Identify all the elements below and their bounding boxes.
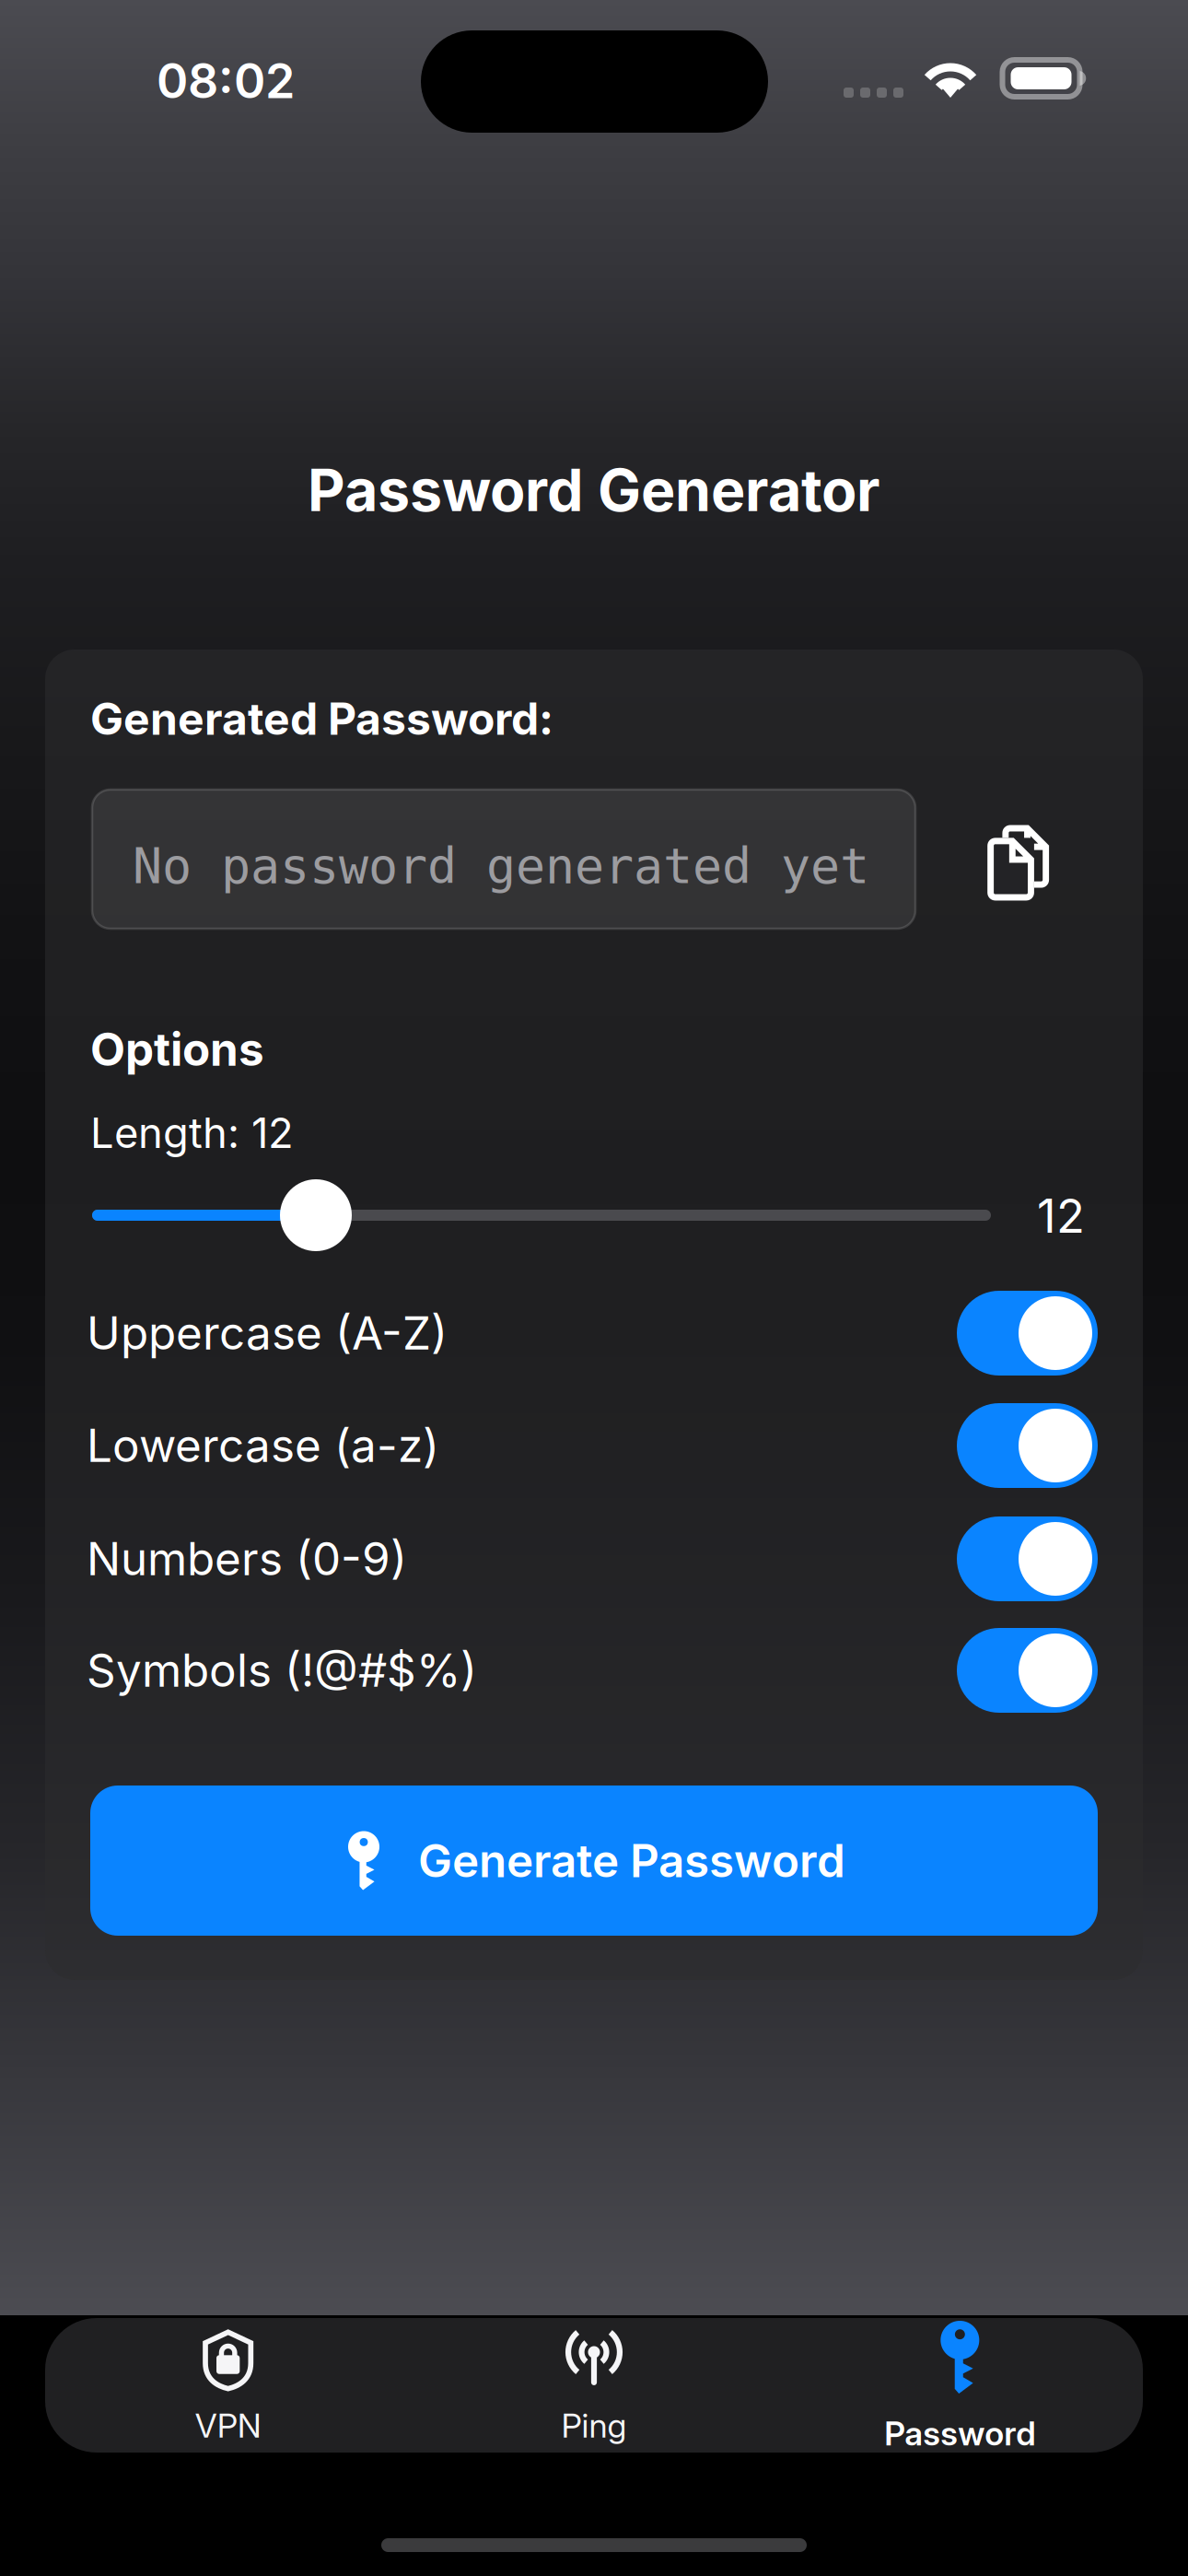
staticText: VPN (195, 2405, 261, 2446)
staticText: Lowercase (a-z) (87, 1418, 439, 1473)
staticText: Options (90, 1022, 264, 1077)
button[interactable]: Password (777, 2318, 1143, 2453)
staticText: 12 (1037, 1188, 1085, 1244)
staticText: Uppercase (A-Z) (87, 1306, 448, 1361)
button[interactable]: Uppercase (A-Z) (90, 1291, 1098, 1376)
button[interactable]: Copy password (959, 804, 1069, 915)
staticText: Symbols (!@#$%) (87, 1643, 477, 1698)
button[interactable]: Symbols (!@#$%) (90, 1628, 1098, 1713)
button[interactable]: Generate Password (90, 1786, 1098, 1936)
button[interactable]: Lowercase (a-z) (90, 1403, 1098, 1488)
staticText: Password (884, 2413, 1035, 2453)
staticText: Length: 12 (90, 1107, 294, 1158)
staticText: Password Generator (308, 455, 880, 525)
staticText: 08:02 (157, 52, 295, 110)
staticText: Numbers (0-9) (87, 1531, 407, 1586)
staticText: No password generated yet (133, 837, 869, 895)
staticText: Ping (561, 2405, 627, 2446)
button[interactable]: VPN (45, 2318, 411, 2453)
staticText: Generate Password (418, 1833, 845, 1888)
button[interactable]: Ping (411, 2318, 777, 2453)
button[interactable]: Numbers (0-9) (90, 1516, 1098, 1601)
staticText: Generated Password: (90, 692, 553, 745)
